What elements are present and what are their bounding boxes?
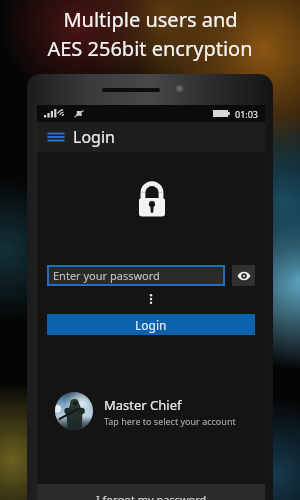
staticText: Master Chief xyxy=(104,396,182,414)
button[interactable]: More options xyxy=(144,292,158,306)
staticText: 01:03 xyxy=(235,108,259,120)
button[interactable]: I forgot my password xyxy=(37,484,265,500)
staticText: Login xyxy=(73,126,115,148)
button[interactable]: Master Chief xyxy=(37,387,265,435)
staticText: Login xyxy=(135,317,167,333)
button[interactable]: Open navigation menu xyxy=(43,124,69,150)
staticText: Enter your password xyxy=(53,268,160,283)
button[interactable]: Enter your password xyxy=(47,265,225,286)
button[interactable]: Show password xyxy=(232,265,255,286)
staticText: I forgot my password xyxy=(96,492,207,500)
button[interactable]: Login xyxy=(47,314,255,335)
staticText: AES 256bit encryption xyxy=(47,35,253,62)
staticText: Tap here to select your account xyxy=(104,415,236,427)
staticText: Multiple users and xyxy=(63,6,238,33)
